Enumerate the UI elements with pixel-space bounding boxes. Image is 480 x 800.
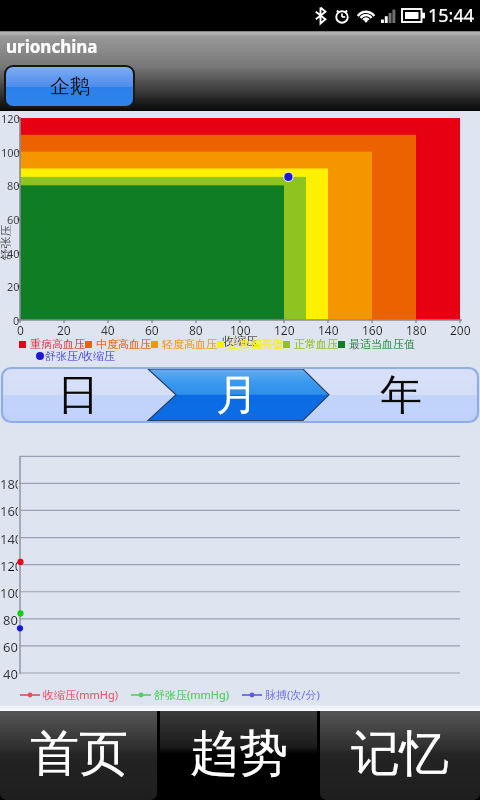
staticText: 40 — [3, 665, 18, 683]
staticText: 记忆 — [351, 723, 449, 785]
staticText: urionchina — [6, 35, 98, 58]
staticText: 160 — [0, 502, 18, 520]
staticText: 100 — [1, 145, 20, 160]
staticText: 正常血压 — [294, 337, 338, 351]
staticText: 舒张压/收缩压 — [45, 348, 116, 363]
staticText: 中度高血压 — [96, 337, 151, 351]
staticText: 120 — [1, 111, 20, 126]
staticText: 15:44 — [428, 3, 475, 28]
staticText: 80 — [3, 611, 18, 629]
button[interactable]: 记忆 — [320, 711, 480, 800]
staticText: 20 — [7, 279, 20, 294]
staticText: 收缩压(mmHg) — [43, 687, 119, 702]
staticText: 100 — [0, 584, 18, 602]
staticText: 180 — [0, 475, 18, 493]
staticText: 0 — [17, 322, 24, 338]
button[interactable]: 日 — [0, 362, 160, 428]
staticText: 日 — [57, 369, 99, 422]
staticText: 正常偏高值 — [228, 337, 283, 351]
staticText: 趋势 — [190, 723, 288, 785]
staticText: 舒张压 — [0, 224, 10, 260]
staticText: 月 — [216, 369, 258, 422]
staticText: 0 — [13, 313, 20, 328]
staticText: 140 — [318, 322, 339, 338]
button[interactable]: 首页 — [0, 711, 157, 800]
button[interactable]: 年 — [320, 362, 480, 428]
staticText: 140 — [0, 530, 18, 548]
staticText: 120 — [0, 557, 18, 575]
button[interactable]: 趋势 — [160, 711, 317, 800]
staticText: 160 — [362, 322, 383, 338]
staticText: 120 — [274, 322, 295, 338]
staticText: 舒张压(mmHg) — [154, 687, 230, 702]
staticText: 收缩压 — [222, 333, 258, 348]
button[interactable]: 月 — [160, 362, 320, 428]
staticText: 40 — [7, 246, 20, 261]
staticText: 60 — [145, 322, 159, 338]
staticText: 80 — [189, 322, 203, 338]
staticText: 100 — [230, 322, 251, 338]
staticText: 最适当血压值 — [349, 337, 415, 351]
button[interactable]: 企鹅 — [6, 67, 133, 106]
staticText: 脉搏(次/分) — [265, 687, 320, 702]
staticText: 20 — [57, 322, 71, 338]
staticText: 60 — [7, 212, 20, 227]
staticText: 180 — [406, 322, 427, 338]
staticText: 200 — [450, 322, 471, 338]
staticText: 年 — [380, 369, 422, 422]
staticText: 首页 — [30, 723, 128, 785]
staticText: 企鹅 — [50, 74, 90, 99]
staticText: 轻度高血压 — [162, 337, 217, 351]
staticText: 40 — [101, 322, 115, 338]
staticText: 80 — [7, 178, 20, 193]
staticText: 60 — [3, 638, 18, 656]
staticText: 重病高血压 — [30, 337, 85, 351]
